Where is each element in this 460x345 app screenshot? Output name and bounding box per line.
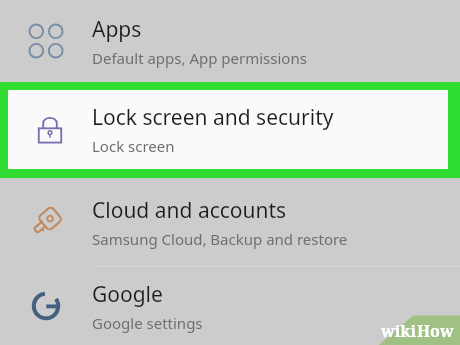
button[interactable]: Cloud and accounts <box>0 178 460 266</box>
staticText: Google <box>92 280 163 309</box>
staticText: Samsung Cloud, Backup and restore <box>92 229 348 249</box>
staticText: Google settings <box>92 313 203 333</box>
staticText: wiki <box>381 320 417 342</box>
button[interactable]: Apps <box>0 0 460 82</box>
staticText: Lock screen <box>92 136 175 156</box>
staticText: Apps <box>92 15 142 44</box>
staticText: Cloud and accounts <box>92 196 287 225</box>
staticText: Lock screen and security <box>92 103 334 132</box>
staticText: Default apps, App permissions <box>92 48 307 68</box>
staticText: How <box>417 320 454 342</box>
button[interactable]: Google <box>0 267 460 345</box>
button[interactable]: Lock screen and security <box>0 82 460 178</box>
